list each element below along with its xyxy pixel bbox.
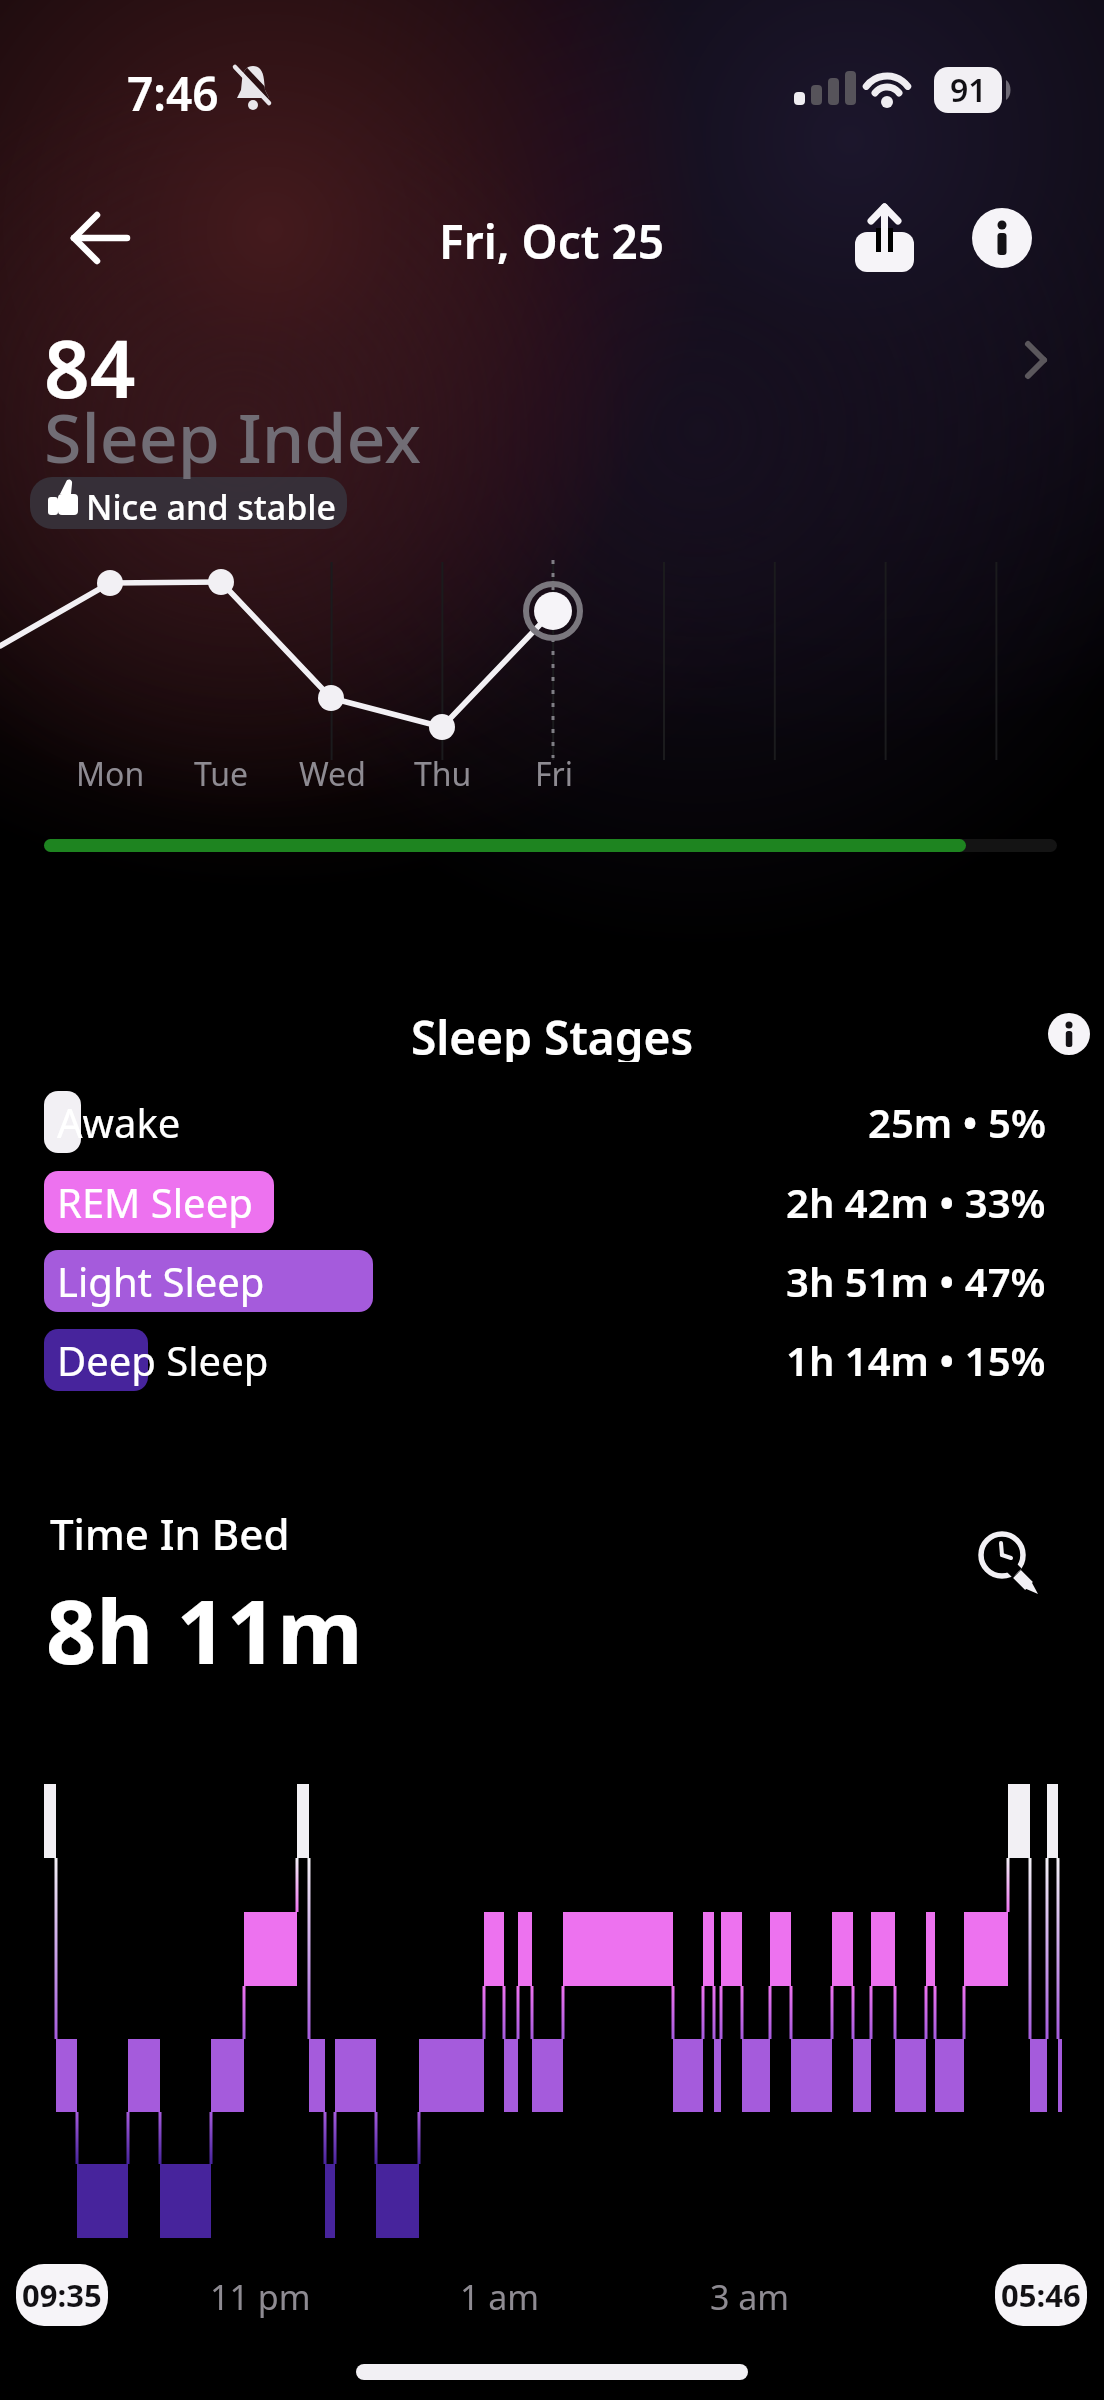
staticText: Light Sleep [57, 1254, 265, 1308]
staticText: 7:46 [127, 62, 219, 116]
staticText: 1h 14m • 15% [786, 1333, 1046, 1387]
button[interactable] [30, 300, 1080, 470]
button[interactable] [845, 200, 925, 276]
staticText: Deep Sleep [57, 1333, 269, 1387]
button[interactable] [962, 200, 1042, 276]
staticText: Wed [299, 752, 366, 796]
staticText: Thu [414, 752, 472, 796]
staticText: Fri [535, 752, 574, 796]
staticText: 11 pm [210, 2274, 311, 2318]
button[interactable] [1040, 1006, 1098, 1062]
staticText: 8h 11m [46, 1570, 363, 1690]
staticText: Tue [194, 752, 249, 796]
button[interactable] [60, 200, 140, 276]
staticText: 05:46 [1001, 2274, 1081, 2316]
staticText: Sleep Index [44, 390, 422, 483]
staticText: 2h 42m • 33% [786, 1175, 1046, 1229]
staticText: 84 [44, 312, 136, 421]
staticText: Time In Bed [50, 1505, 290, 1562]
button[interactable] [975, 1528, 1045, 1598]
staticText: Nice and stable [86, 484, 337, 530]
staticText: 1 am [460, 2274, 540, 2318]
staticText: 09:35 [22, 2274, 102, 2316]
staticText: Sleep Stages [411, 1006, 694, 1062]
staticText: Awake [57, 1095, 181, 1149]
button[interactable] [30, 477, 347, 529]
staticText: 3h 51m • 47% [786, 1254, 1046, 1308]
staticText: REM Sleep [57, 1175, 253, 1229]
staticText: 25m • 5% [868, 1095, 1046, 1149]
staticText: Fri, Oct 25 [439, 210, 665, 264]
staticText: 3 am [710, 2274, 790, 2318]
staticText: Mon [76, 752, 145, 796]
staticText: 91 [950, 68, 987, 112]
